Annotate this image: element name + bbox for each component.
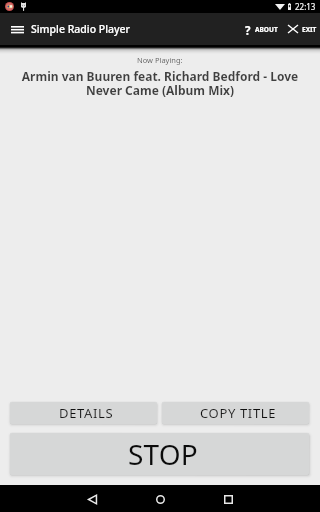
staticText: COPY TITLE <box>200 404 277 422</box>
button[interactable]: DETAILS <box>10 402 157 424</box>
button[interactable]: Recent apps <box>208 486 248 512</box>
staticText: STOP <box>128 435 198 473</box>
button[interactable]: EXIT <box>281 13 320 45</box>
staticText: ABOUT <box>255 25 278 34</box>
button[interactable]: ? <box>236 13 281 45</box>
staticText: 22:13 <box>295 1 316 12</box>
button[interactable]: Back <box>72 486 112 512</box>
staticText: ? <box>245 23 251 39</box>
button[interactable]: STOP <box>10 433 309 475</box>
staticText: Now Playing: <box>137 55 183 65</box>
button[interactable]: Home <box>140 486 180 512</box>
staticText: EXIT <box>302 25 317 34</box>
staticText: Armin van Buuren feat. Richard Bedford -… <box>9 68 311 98</box>
staticText: Simple Radio Player <box>31 22 131 36</box>
button[interactable]: Open navigation menu <box>0 13 31 45</box>
button[interactable]: COPY TITLE <box>162 402 309 424</box>
staticText: DETAILS <box>59 404 114 422</box>
